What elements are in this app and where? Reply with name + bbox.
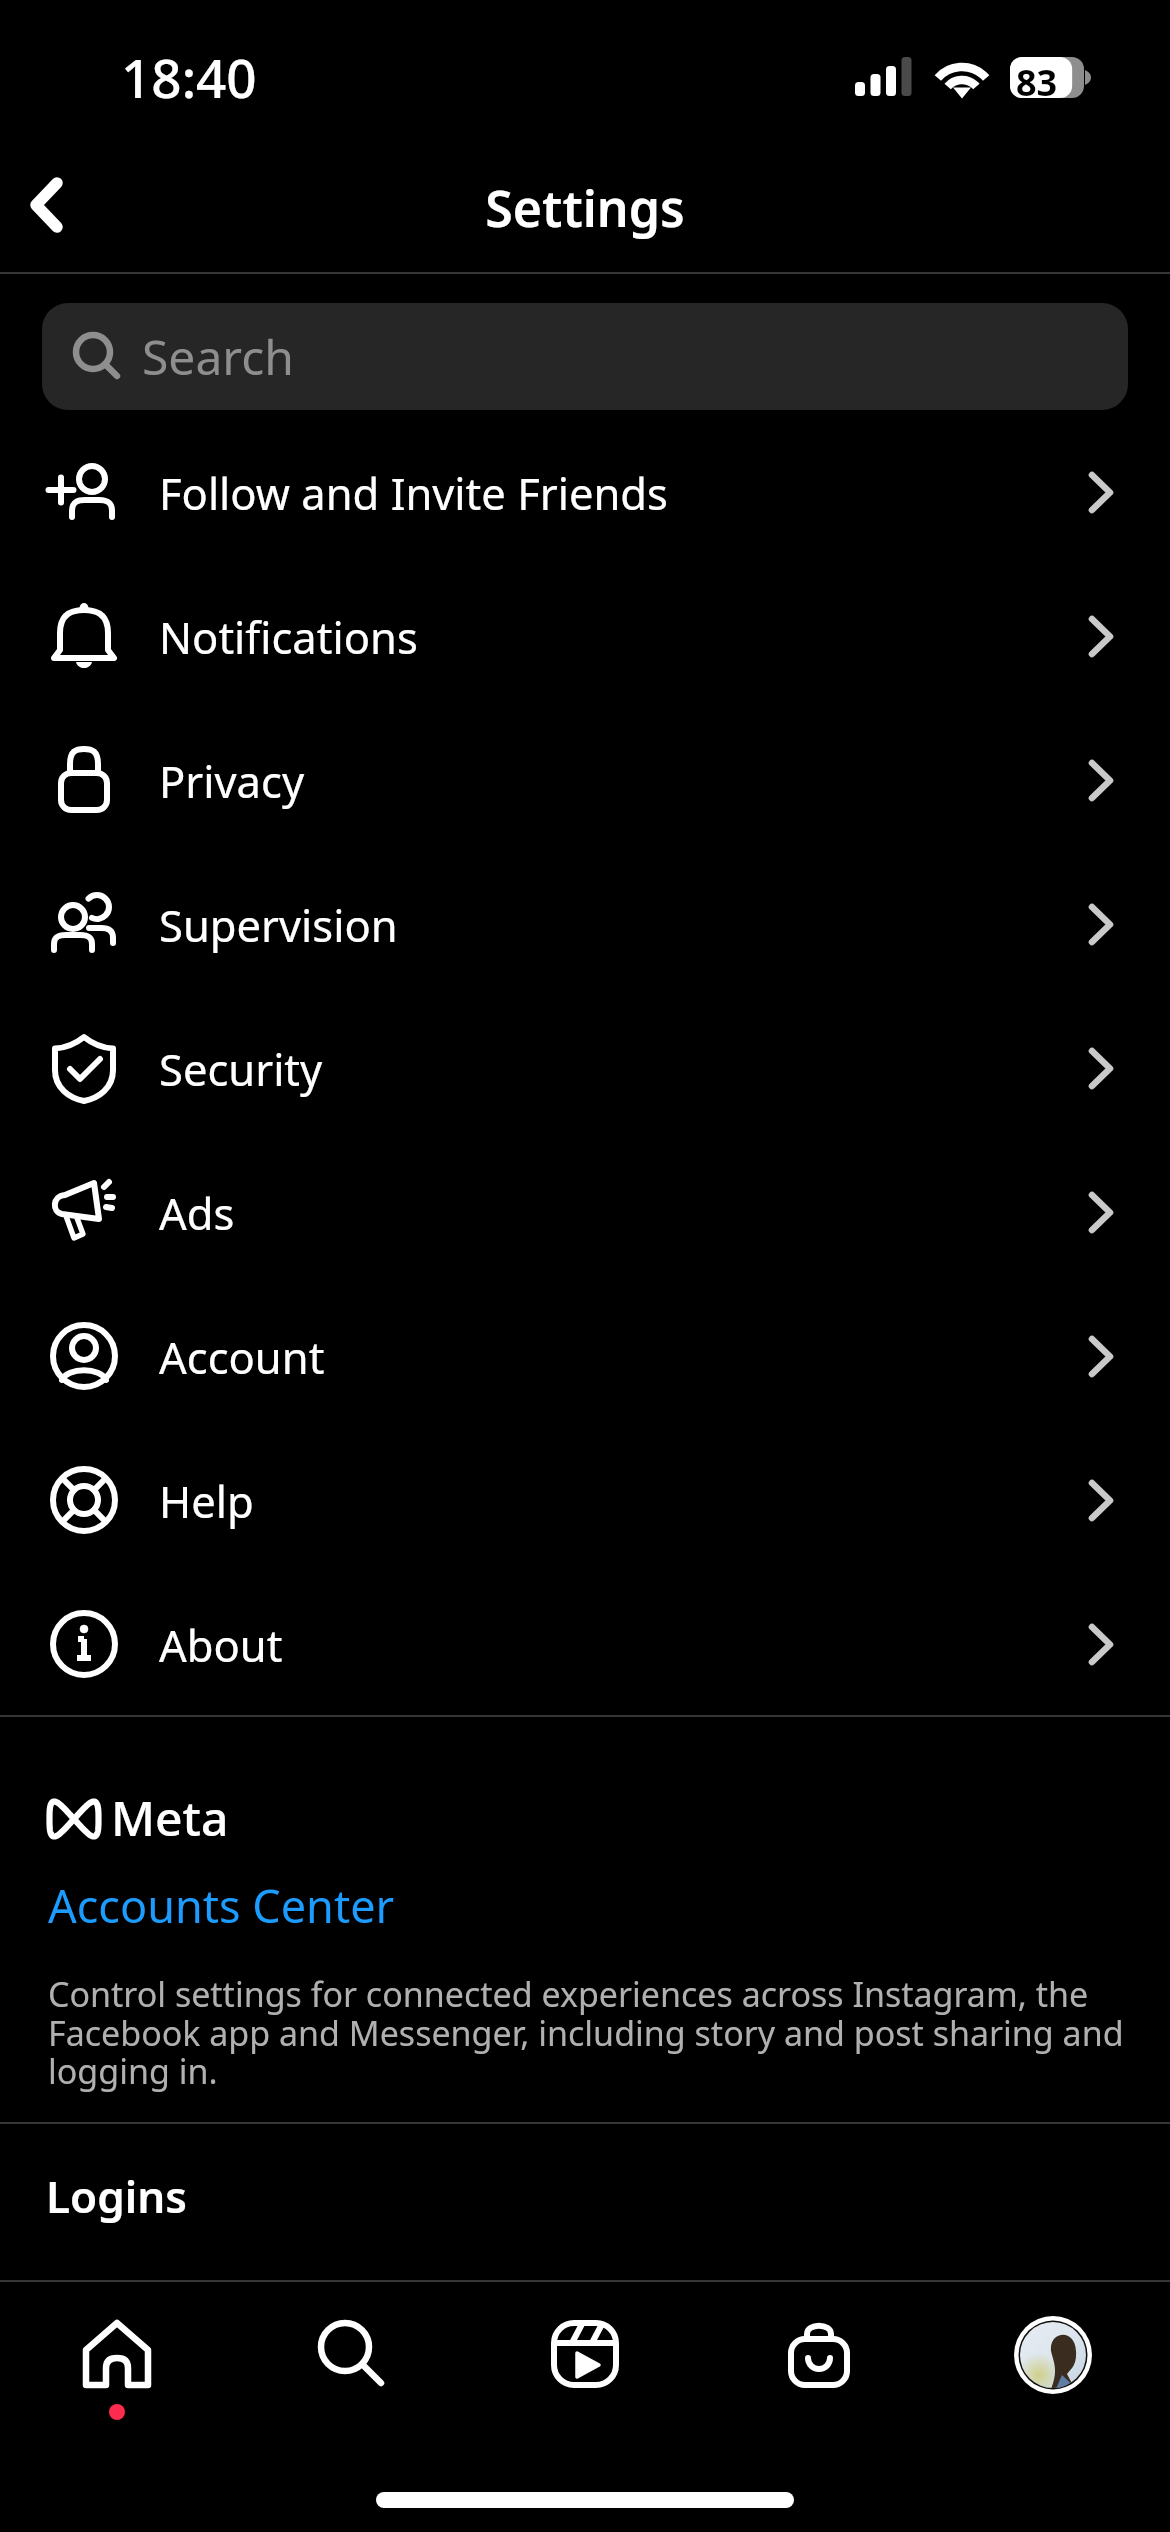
button[interactable]: Notifications [0, 564, 1170, 708]
button[interactable]: Shop [702, 2282, 936, 2422]
button[interactable]: Reels [468, 2282, 702, 2422]
staticText: Accounts Center [48, 1875, 395, 1936]
button[interactable]: Ads [0, 1140, 1170, 1284]
staticText: Security [159, 1039, 323, 1098]
staticText: Search [142, 324, 294, 389]
staticText: Notifications [159, 607, 418, 666]
staticText: Meta [111, 1785, 229, 1850]
button[interactable]: Search [234, 2282, 468, 2422]
button[interactable]: Supervision [0, 852, 1170, 996]
button[interactable]: Privacy [0, 708, 1170, 852]
staticText: Supervision [159, 895, 398, 954]
staticText: Account [159, 1327, 325, 1386]
staticText: Privacy [159, 751, 305, 810]
button[interactable]: Help [0, 1428, 1170, 1572]
button[interactable]: Account [0, 1284, 1170, 1428]
button[interactable]: Accounts Center [48, 1874, 468, 1936]
button[interactable]: Profile [936, 2282, 1170, 2422]
button[interactable]: Back [0, 143, 110, 253]
staticText: Ads [159, 1183, 235, 1242]
staticText: Help [159, 1471, 254, 1530]
staticText: Logins [46, 2166, 187, 2226]
staticText: Settings [0, 174, 1170, 242]
button[interactable]: Home [0, 2282, 234, 2422]
staticText: 83 [1016, 58, 1058, 107]
staticText: Control settings for connected experienc… [48, 1971, 1124, 2094]
staticText: 18:40 [121, 41, 257, 113]
staticText: About [159, 1615, 283, 1674]
button[interactable]: Follow and Invite Friends [0, 420, 1170, 564]
button[interactable]: Search [42, 303, 1128, 410]
staticText: Follow and Invite Friends [159, 463, 668, 522]
button[interactable]: Security [0, 996, 1170, 1140]
button[interactable]: About [0, 1572, 1170, 1716]
